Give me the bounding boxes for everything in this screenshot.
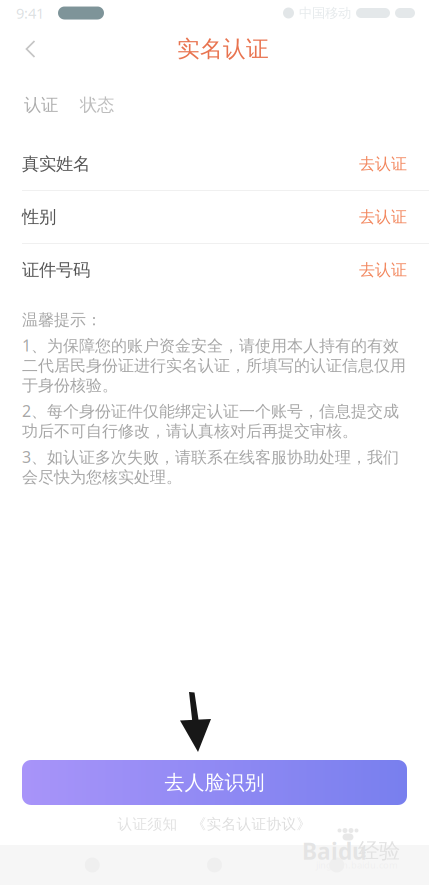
staticText: 经验 — [358, 838, 400, 864]
staticText: 1、为保障您的账户资金安全，请使用本人持有的有效二代居民身份证进行实名认证，所填… — [22, 335, 406, 395]
button[interactable]: 证件号码 — [0, 244, 429, 296]
staticText: 认证 — [24, 94, 58, 116]
button[interactable]: 真实姓名 — [0, 138, 429, 191]
staticText: 性别 — [22, 206, 56, 228]
staticText: 3、如认证多次失败，请联系在线客服协助处理，我们会尽快为您核实处理。 — [22, 446, 399, 487]
button[interactable]: 最近任务 — [307, 845, 367, 885]
staticText: 《实名认证协议》 — [191, 815, 311, 833]
staticText: 温馨提示： — [22, 310, 102, 330]
staticText: 认证须知 — [117, 815, 177, 833]
button[interactable]: 去人脸识别 — [22, 760, 407, 805]
button[interactable]: 认证须知 — [117, 805, 311, 835]
staticText: 中国移动 — [299, 5, 351, 21]
staticText: 真实姓名 — [22, 153, 90, 175]
staticText: 2、每个身份证件仅能绑定认证一个账号，信息提交成功后不可自行修改，请认真核对后再… — [22, 400, 399, 441]
staticText: 去认证 — [359, 260, 407, 280]
staticText: 状态 — [80, 94, 114, 116]
staticText: 去人脸识别 — [164, 770, 264, 795]
staticText: 证件号码 — [22, 259, 90, 281]
staticText: 去认证 — [359, 154, 407, 174]
button[interactable]: 性别 — [0, 191, 429, 244]
staticText: 去认证 — [359, 207, 407, 227]
staticText: 9:41 — [16, 3, 44, 23]
staticText: Baidu — [302, 836, 367, 866]
staticText: jingyan.baidu.com — [316, 859, 398, 871]
staticText: 实名认证 — [177, 35, 269, 63]
button[interactable]: 返回 — [0, 26, 56, 72]
